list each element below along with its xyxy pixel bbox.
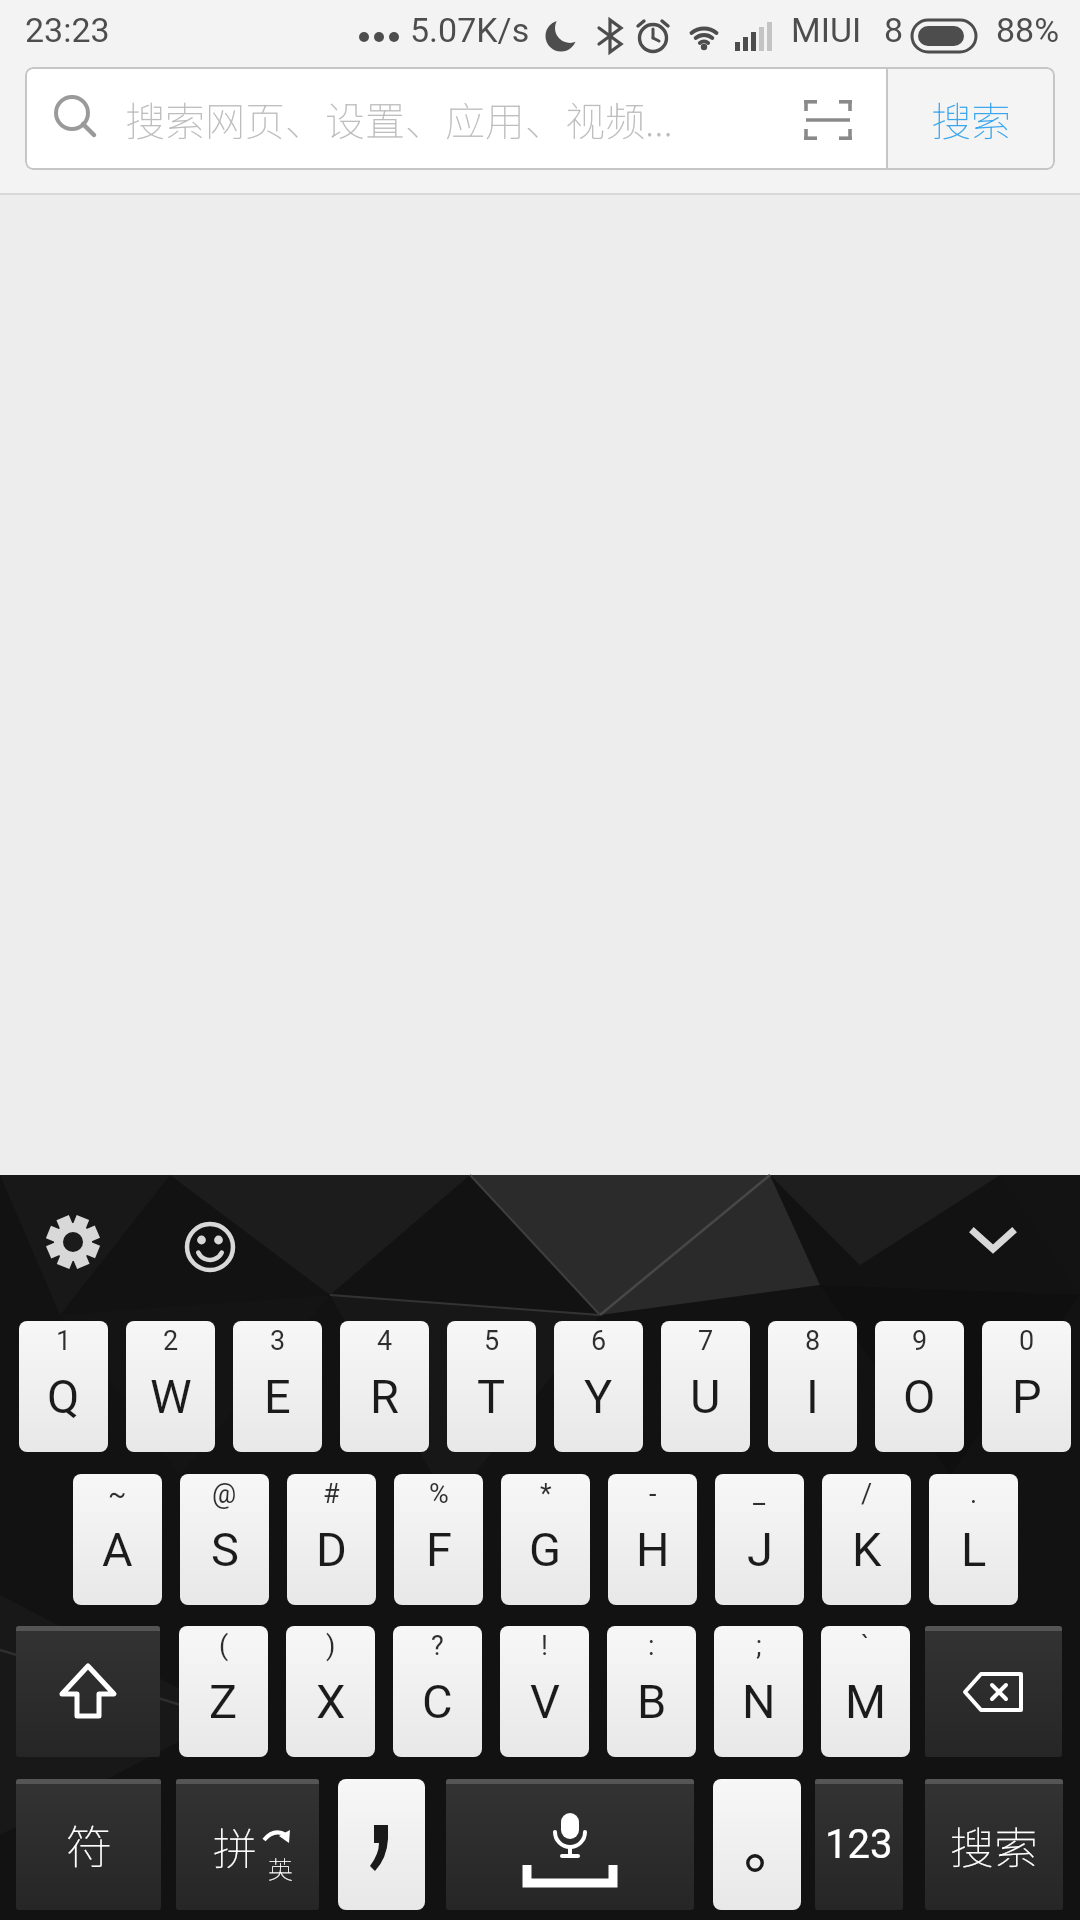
staticText: 0 <box>1019 1325 1035 1357</box>
staticText: A <box>102 1522 133 1577</box>
staticText: Z <box>209 1674 238 1729</box>
staticText: 88% <box>996 10 1060 50</box>
button[interactable]: % <box>394 1474 483 1605</box>
staticText: @ <box>212 1478 237 1510</box>
staticText: V <box>530 1674 560 1729</box>
staticText: Y <box>584 1369 613 1424</box>
button[interactable]: 9 <box>875 1321 964 1452</box>
staticText: # <box>323 1478 340 1510</box>
staticText: 9 <box>912 1325 928 1357</box>
staticText: ! <box>541 1630 548 1662</box>
staticText: 搜索 <box>950 1813 1038 1877</box>
button[interactable]: 123 <box>815 1779 903 1910</box>
staticText: _ <box>753 1478 766 1510</box>
staticText: F <box>426 1522 452 1577</box>
staticText: J <box>747 1522 773 1577</box>
staticText: 符 <box>66 1811 112 1878</box>
staticText: 6 <box>591 1325 607 1357</box>
staticText: P <box>1012 1369 1042 1424</box>
staticText: B <box>637 1674 667 1729</box>
button[interactable]: 搜索 <box>886 67 1055 170</box>
button[interactable]: 6 <box>554 1321 643 1452</box>
staticText: 23:23 <box>25 10 110 50</box>
staticText: G <box>529 1522 562 1577</box>
staticText: C <box>422 1674 453 1729</box>
button[interactable]: 8 <box>768 1321 857 1452</box>
staticText: R <box>370 1369 399 1424</box>
staticText: ~ <box>108 1478 127 1510</box>
staticText: 8 <box>805 1325 821 1357</box>
button[interactable] <box>338 1779 425 1910</box>
staticText: ` <box>861 1630 870 1662</box>
staticText: * <box>540 1478 552 1510</box>
staticText: 英 <box>268 1850 294 1886</box>
button[interactable]: 7 <box>661 1321 750 1452</box>
button[interactable]: 5 <box>447 1321 536 1452</box>
button[interactable] <box>16 1626 160 1757</box>
staticText: 2 <box>163 1325 179 1357</box>
button[interactable] <box>446 1779 694 1910</box>
button[interactable]: * <box>501 1474 590 1605</box>
staticText: 7 <box>698 1325 714 1357</box>
staticText: H <box>636 1522 670 1577</box>
button[interactable] <box>41 1210 105 1274</box>
staticText: U <box>690 1369 721 1424</box>
button[interactable]: 符 <box>16 1779 161 1910</box>
button[interactable]: @ <box>180 1474 269 1605</box>
button[interactable]: 2 <box>126 1321 215 1452</box>
staticText: ? <box>431 1630 444 1662</box>
button[interactable]: ? <box>393 1626 482 1757</box>
staticText: 搜索网页、设置、应用、视频... <box>125 90 673 148</box>
button[interactable]: ) <box>286 1626 375 1757</box>
staticText: 3 <box>270 1325 286 1357</box>
button[interactable]: ~ <box>73 1474 162 1605</box>
button[interactable]: / <box>822 1474 911 1605</box>
staticText: N <box>742 1674 776 1729</box>
staticText: S <box>211 1522 239 1577</box>
staticText: 5.07K/s <box>410 10 530 50</box>
staticText: W <box>150 1369 192 1424</box>
staticText: ) <box>326 1630 336 1662</box>
button[interactable]: ; <box>714 1626 803 1757</box>
staticText: MIUI <box>791 10 862 50</box>
button[interactable]: ! <box>500 1626 589 1757</box>
staticText: E <box>264 1369 291 1424</box>
button[interactable]: . <box>929 1474 1018 1605</box>
button[interactable] <box>925 1626 1062 1757</box>
staticText: . <box>970 1478 978 1510</box>
button[interactable]: : <box>607 1626 696 1757</box>
button[interactable]: 搜索 <box>25 67 1055 170</box>
button[interactable]: 搜索 <box>925 1779 1063 1910</box>
staticText: - <box>649 1478 657 1510</box>
staticText: L <box>961 1522 987 1577</box>
staticText: 5 <box>484 1325 500 1357</box>
staticText: T <box>477 1369 506 1424</box>
button[interactable] <box>964 1219 1022 1259</box>
button[interactable] <box>713 1779 801 1910</box>
button[interactable]: ` <box>821 1626 910 1757</box>
button[interactable]: _ <box>715 1474 804 1605</box>
staticText: : <box>648 1630 655 1662</box>
staticText: 搜索 <box>931 90 1011 148</box>
button[interactable]: ( <box>179 1626 268 1757</box>
button[interactable]: 0 <box>982 1321 1071 1452</box>
staticText: Q <box>47 1369 80 1424</box>
button[interactable]: 3 <box>233 1321 322 1452</box>
staticText: ( <box>219 1630 229 1662</box>
staticText: M <box>845 1674 887 1729</box>
staticText: ; <box>756 1630 762 1662</box>
staticText: I <box>806 1369 819 1424</box>
staticText: X <box>316 1674 346 1729</box>
staticText: 拼 <box>213 1814 257 1878</box>
button[interactable]: # <box>287 1474 376 1605</box>
button[interactable]: 1 <box>19 1321 108 1452</box>
staticText: O <box>903 1369 936 1424</box>
staticText: D <box>316 1522 347 1577</box>
button[interactable]: 4 <box>340 1321 429 1452</box>
button[interactable]: 拼 <box>176 1779 319 1910</box>
button[interactable] <box>183 1220 237 1274</box>
button[interactable]: - <box>608 1474 697 1605</box>
staticText: 8 <box>884 10 904 50</box>
staticText: 4 <box>377 1325 393 1357</box>
staticText: K <box>852 1522 882 1577</box>
